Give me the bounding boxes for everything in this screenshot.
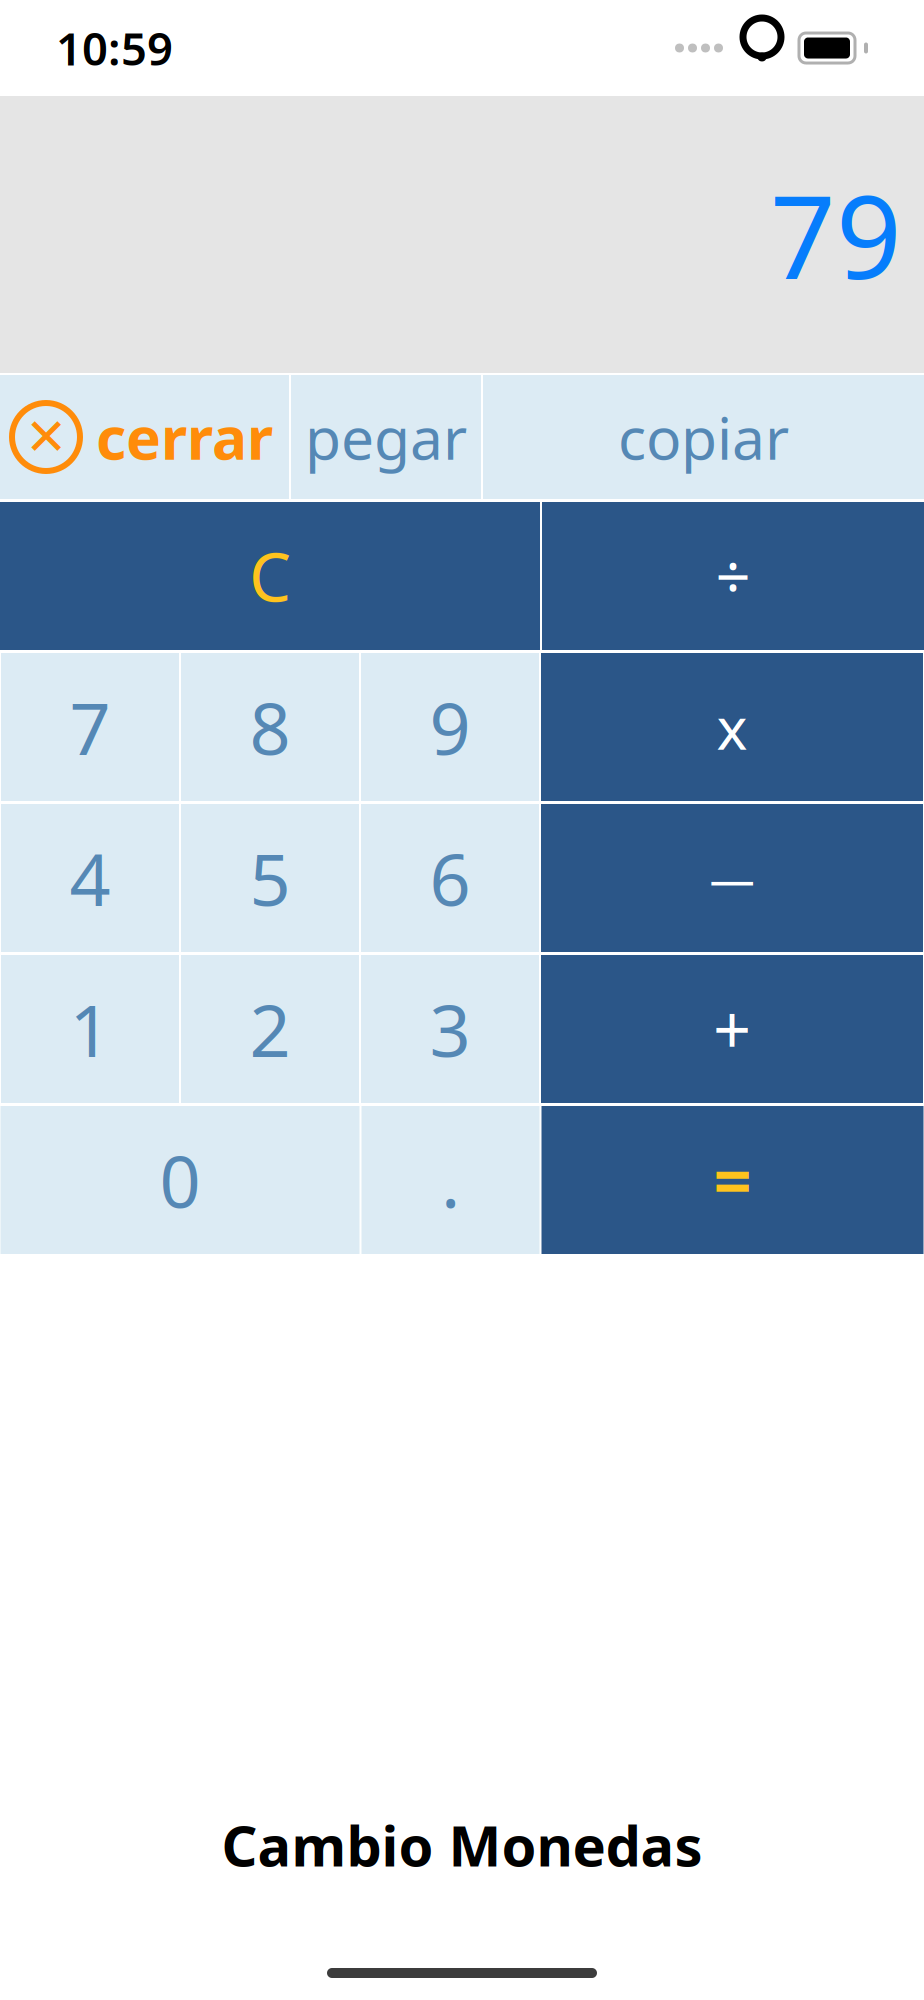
- button[interactable]: C: [0, 502, 540, 650]
- button[interactable]: ✕: [0, 375, 289, 499]
- button[interactable]: 2: [181, 955, 359, 1103]
- button[interactable]: 6: [361, 804, 539, 952]
- button[interactable]: +: [541, 955, 923, 1103]
- button[interactable]: 8: [181, 653, 359, 801]
- button[interactable]: 7: [1, 653, 179, 801]
- staticText: pegar: [305, 398, 467, 476]
- staticText: 9: [429, 679, 470, 775]
- button[interactable]: 0: [0, 1106, 359, 1254]
- staticText: C: [249, 532, 291, 620]
- button[interactable]: =: [541, 1106, 923, 1254]
- button[interactable]: ÷: [542, 502, 924, 650]
- staticText: 4: [69, 830, 110, 926]
- staticText: copiar: [618, 398, 789, 476]
- staticText: 79: [770, 158, 902, 311]
- button[interactable]: copiar: [483, 375, 924, 499]
- staticText: 2: [249, 981, 290, 1077]
- staticText: 5: [249, 830, 290, 926]
- staticText: x: [716, 688, 747, 766]
- staticText: =: [713, 1136, 751, 1224]
- button[interactable]: x: [541, 653, 923, 801]
- staticText: +: [713, 985, 751, 1073]
- button[interactable]: 3: [361, 955, 539, 1103]
- staticText: —: [709, 848, 754, 908]
- button[interactable]: —: [541, 804, 923, 952]
- staticText: cerrar: [96, 398, 273, 476]
- staticText: 6: [429, 830, 470, 926]
- button[interactable]: pegar: [291, 375, 481, 499]
- staticText: 1: [69, 981, 110, 1077]
- staticText: Cambio Monedas: [221, 1808, 702, 1882]
- staticText: 10:59: [56, 18, 173, 78]
- staticText: .: [441, 1132, 460, 1228]
- button[interactable]: .: [361, 1106, 539, 1254]
- button[interactable]: 5: [181, 804, 359, 952]
- staticText: 3: [429, 981, 470, 1077]
- staticText: 0: [159, 1132, 200, 1228]
- staticText: 8: [249, 679, 290, 775]
- button[interactable]: 9: [361, 653, 539, 801]
- staticText: 7: [69, 679, 110, 775]
- button[interactable]: 1: [1, 955, 179, 1103]
- staticText: ✕: [25, 408, 67, 466]
- button[interactable]: 4: [1, 804, 179, 952]
- staticText: ÷: [715, 535, 750, 617]
